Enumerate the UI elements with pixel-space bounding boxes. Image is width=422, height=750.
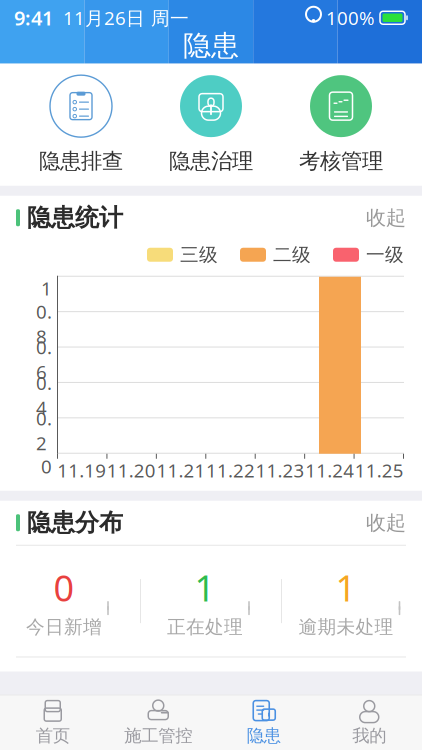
staticText: 11.21 (156, 458, 205, 483)
staticText: 逾期未处理 (298, 616, 393, 638)
staticText: 隐患治理 (169, 148, 253, 174)
staticText: 11.20 (107, 458, 156, 483)
staticText: 0.2 (36, 406, 52, 455)
staticText: 今日新增 (26, 616, 102, 638)
button[interactable]: 我的 (316, 693, 422, 750)
staticText: 11.19 (57, 458, 106, 483)
staticText: 0.4 (36, 370, 52, 420)
staticText: 收起 (366, 510, 406, 535)
staticText: 1 (335, 564, 356, 612)
staticText: 考核管理 (299, 148, 383, 174)
staticText: 11.24 (305, 458, 354, 483)
button[interactable]: 首页 (0, 693, 105, 750)
button[interactable]: 隐患 (211, 693, 316, 750)
staticText: 首页 (36, 725, 70, 746)
button[interactable]: 收起 (356, 504, 406, 541)
staticText: 我的 (352, 725, 386, 746)
staticText: 1 (41, 276, 52, 301)
staticText: 0 (53, 564, 74, 612)
button[interactable]: 收起 (356, 199, 406, 236)
staticText: 11.25 (355, 458, 404, 483)
staticText: 11.23 (256, 458, 305, 483)
button[interactable]: 1 (282, 556, 422, 646)
button[interactable]: 0 (0, 556, 140, 646)
staticText: 二级 (273, 243, 311, 266)
staticText: 施工管控 (124, 725, 192, 746)
staticText: 隐患分布 (27, 508, 123, 537)
button[interactable]: 隐患排查 (16, 73, 146, 176)
staticText: 隐患 (247, 725, 281, 746)
staticText: 正在处理 (167, 616, 243, 638)
staticText: 三级 (180, 243, 218, 266)
staticText: 隐患 (183, 29, 239, 63)
staticText: 0.8 (36, 299, 52, 349)
staticText: 0.6 (36, 335, 52, 384)
staticText: 9:41 (14, 4, 53, 31)
button[interactable]: 施工管控 (105, 693, 211, 750)
staticText: 11月26日 周一 (63, 5, 189, 30)
button[interactable]: 考核管理 (276, 73, 406, 176)
staticText: 隐患排查 (39, 148, 123, 174)
staticText: 收起 (366, 205, 406, 230)
staticText: 11.22 (206, 458, 255, 483)
staticText: 1 (194, 564, 215, 612)
staticText: 隐患统计 (27, 203, 123, 232)
button[interactable]: 1 (141, 556, 281, 646)
staticText: 0 (41, 454, 52, 479)
staticText: 100% (326, 5, 375, 30)
button[interactable]: 隐患治理 (146, 73, 276, 176)
staticText: 一级 (366, 243, 404, 266)
